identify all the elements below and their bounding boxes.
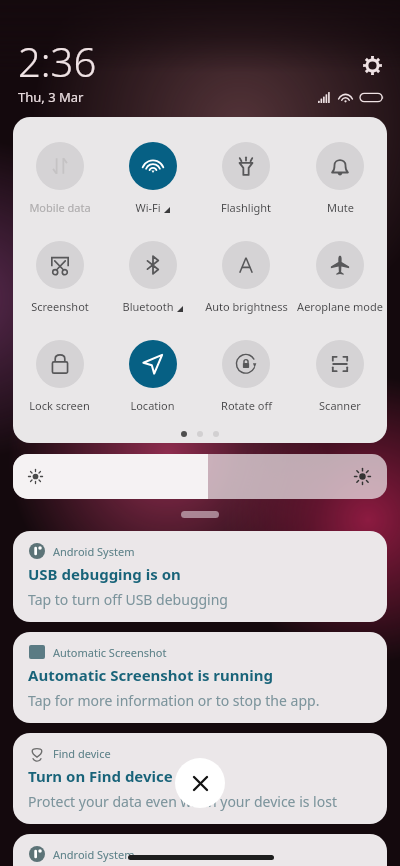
button[interactable]: Bluetooth	[106, 241, 199, 314]
staticText: 2:36	[18, 34, 97, 88]
button[interactable]: Flashlight	[199, 142, 293, 215]
button[interactable]: Screenshot	[13, 241, 106, 314]
staticText: Tap to turn off USB debugging	[28, 590, 228, 609]
staticText: Find device	[53, 746, 111, 761]
button[interactable]: Android System	[13, 531, 387, 622]
staticText: Wi-Fi	[135, 200, 161, 215]
staticText: Automatic Screenshot is running	[28, 665, 273, 685]
button[interactable]: Expand notifications	[181, 511, 219, 518]
staticText: Automatic Screenshot	[53, 645, 167, 660]
staticText: Tap for more information or to stop the …	[28, 691, 320, 710]
staticText: Mobile data	[29, 200, 91, 215]
staticText: Aeroplane mode	[297, 299, 383, 314]
button[interactable]: Lock screen	[13, 340, 106, 413]
staticText: Thu, 3 Mar	[18, 88, 84, 106]
button[interactable]: Find device	[13, 733, 387, 824]
staticText: Location	[130, 398, 175, 413]
staticText: Turn on Find device	[28, 766, 173, 786]
staticText: Auto brightness	[205, 299, 288, 314]
button[interactable]: Auto brightness	[199, 241, 293, 314]
staticText: Bluetooth	[122, 299, 174, 314]
button[interactable]: Wi-Fi	[106, 142, 199, 215]
button[interactable]: Mute	[293, 142, 387, 215]
button[interactable]: Aeroplane mode	[293, 241, 387, 314]
staticText: Lock screen	[29, 398, 90, 413]
staticText: Mute	[327, 200, 354, 215]
staticText: Scanner	[319, 398, 361, 413]
staticText: Flashlight	[221, 200, 271, 215]
button[interactable]: Location	[106, 340, 199, 413]
staticText: Android System	[53, 544, 135, 559]
button[interactable]: Android System	[13, 834, 387, 866]
button[interactable]: Clear all notifications	[175, 758, 225, 808]
button[interactable]: Brightness	[13, 454, 387, 499]
button[interactable]: Automatic Screenshot	[13, 632, 387, 723]
staticText: USB debugging is on	[28, 564, 181, 584]
button[interactable]: Scanner	[293, 340, 387, 413]
button[interactable]: Rotate off	[199, 340, 293, 413]
staticText: Rotate off	[221, 398, 272, 413]
staticText: Android System	[53, 847, 135, 862]
button[interactable]: Settings	[358, 51, 386, 79]
staticText: Protect your data even when your device …	[28, 792, 337, 811]
staticText: Screenshot	[31, 299, 89, 314]
button[interactable]: Mobile data	[13, 142, 106, 215]
